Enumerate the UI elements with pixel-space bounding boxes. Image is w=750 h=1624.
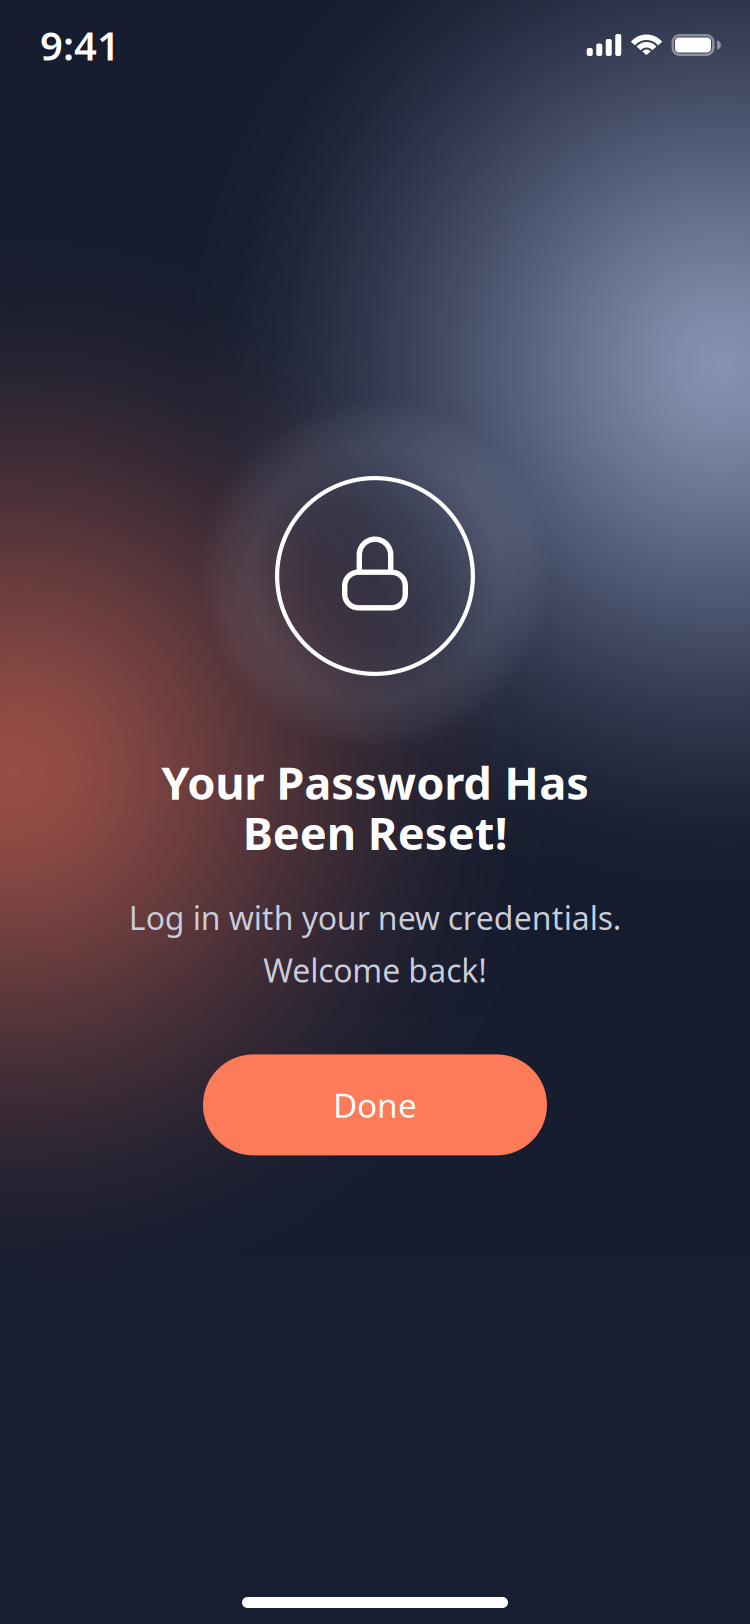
staticText: 9:41 <box>40 18 120 71</box>
staticText: Done <box>333 1083 417 1127</box>
staticText: Your Password Has Been Reset! <box>161 752 589 862</box>
staticText: Log in with your new credentials. Welcom… <box>128 896 621 991</box>
button[interactable]: Done <box>203 1054 547 1155</box>
